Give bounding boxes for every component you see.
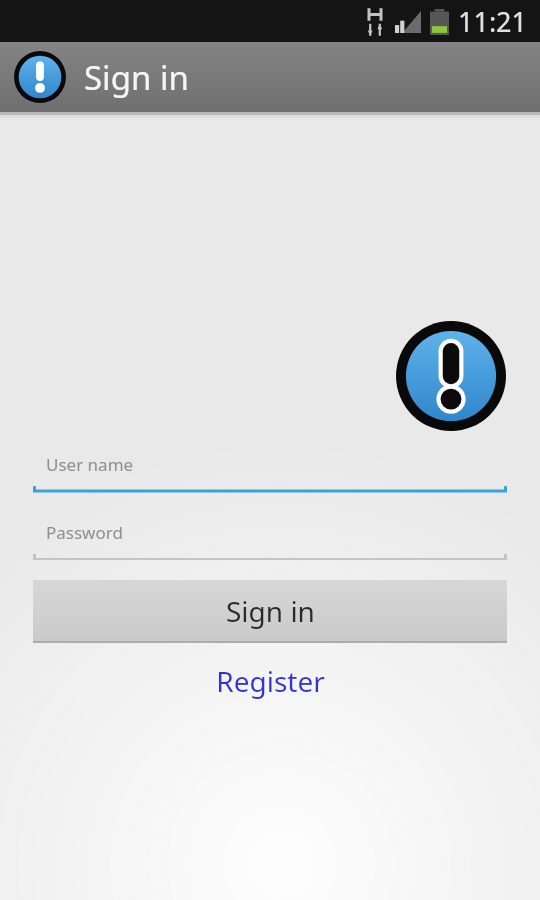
button[interactable]: Password xyxy=(33,509,507,562)
button[interactable]: Register xyxy=(33,662,507,700)
staticText: Password xyxy=(46,521,123,544)
other: App logo xyxy=(14,51,66,103)
staticText: Sign in xyxy=(84,55,189,100)
button[interactable]: User name xyxy=(33,441,507,494)
button[interactable]: Sign in xyxy=(33,580,507,641)
staticText: Register xyxy=(216,662,325,700)
staticText: Sign in xyxy=(226,592,315,630)
staticText: User name xyxy=(46,453,134,476)
staticText: 11:21 xyxy=(458,3,528,40)
